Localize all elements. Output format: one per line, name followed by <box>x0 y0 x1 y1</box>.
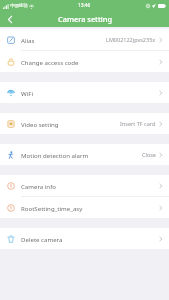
button[interactable]: Alias <box>0 29 169 50</box>
staticText: Insert TF card <box>120 120 156 127</box>
button[interactable]: WiFi <box>0 82 169 103</box>
staticText: LM002122jpvs235x <box>106 36 156 43</box>
staticText: Motion detection alarm <box>21 151 89 159</box>
button[interactable]: Change access code <box>0 51 169 72</box>
button[interactable]: Delete camera <box>0 228 169 249</box>
button[interactable]: Video setting <box>0 113 169 134</box>
staticText: 中国移动 <box>10 3 28 9</box>
staticText: Camera setting <box>58 14 112 24</box>
staticText: RootSetting_time_asy <box>21 204 83 212</box>
button[interactable]: RootSetting_time_asy <box>0 197 169 218</box>
staticText: Change access code <box>21 58 79 66</box>
staticText: WiFi <box>21 89 33 97</box>
staticText: Delete camera <box>21 235 63 243</box>
staticText: Camera info <box>21 182 56 190</box>
staticText: 13:46 <box>78 2 91 9</box>
staticText: Close <box>142 151 156 158</box>
button[interactable]: Motion detection alarm <box>0 144 169 165</box>
staticText: Alias <box>21 36 35 44</box>
button[interactable]: Back <box>0 11 20 27</box>
staticText: Video setting <box>21 120 59 128</box>
button[interactable]: Camera info <box>0 175 169 196</box>
